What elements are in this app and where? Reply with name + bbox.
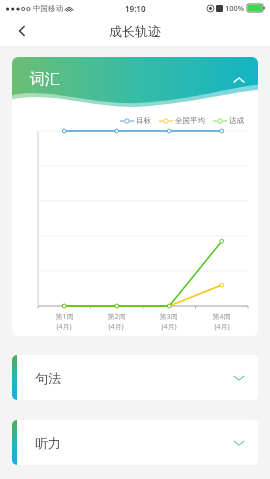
staticText: 第4周 [212,312,231,322]
staticText: (4月) [214,322,230,332]
staticText: 第2周 [107,312,126,322]
staticText: 词汇 [30,70,60,89]
button[interactable]: Back [10,19,34,43]
button[interactable]: 听力 [12,420,258,465]
staticText: 成长轨迹 [109,23,161,39]
staticText: (4月) [161,322,177,332]
staticText: 目标 [136,116,151,125]
staticText: 100% [225,3,245,13]
staticText: 句法 [35,370,61,386]
button[interactable]: 句法 [12,355,258,400]
staticText: 全国平均 [175,116,205,125]
staticText: 第3周 [159,312,178,322]
button[interactable]: 词汇 [12,57,258,110]
staticText: (4月) [108,322,124,332]
staticText: 达成 [229,116,244,125]
staticText: 19:10 [125,3,146,14]
staticText: 听力 [35,435,61,451]
staticText: (4月) [56,322,72,332]
staticText: 第1周 [55,312,74,322]
button[interactable]: Collapse 词汇 [228,69,250,91]
staticText: 中国移动 [33,4,63,13]
